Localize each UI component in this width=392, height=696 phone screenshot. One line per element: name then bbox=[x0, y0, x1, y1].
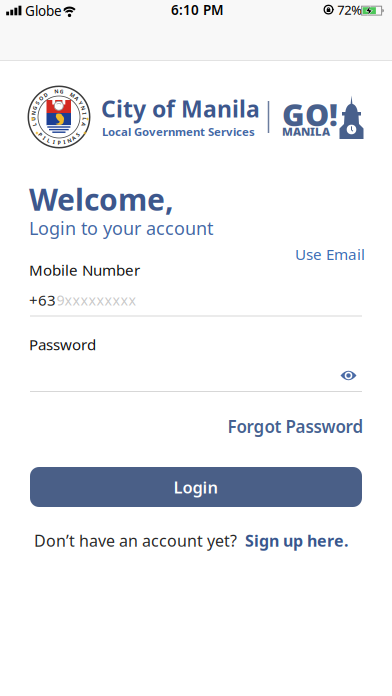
staticText: Login bbox=[173, 476, 218, 498]
staticText: Don’t have an account yet? bbox=[34, 530, 237, 551]
staticText: 72% bbox=[337, 1, 362, 18]
staticText: Welcome, bbox=[29, 179, 174, 219]
staticText: N bbox=[67, 137, 71, 144]
staticText: Sign up here. bbox=[245, 530, 348, 551]
button[interactable]: Login bbox=[30, 467, 362, 507]
staticText: Forgot Password bbox=[227, 415, 363, 438]
staticText: MANILA bbox=[282, 124, 330, 139]
staticText: A bbox=[82, 121, 86, 128]
staticText: Local Government Services bbox=[102, 124, 255, 139]
staticText: +63 bbox=[29, 290, 56, 310]
staticText: P bbox=[57, 139, 60, 146]
staticText: D bbox=[43, 91, 47, 98]
button[interactable]: Use Email bbox=[290, 244, 370, 264]
staticText: G bbox=[33, 104, 37, 111]
staticText: I bbox=[63, 138, 65, 145]
staticText: 9xxxxxxxxx bbox=[56, 291, 136, 309]
staticText: S bbox=[36, 99, 39, 106]
staticText: I bbox=[83, 110, 85, 117]
staticText: U bbox=[31, 115, 35, 122]
staticText: Globe bbox=[25, 2, 62, 20]
staticText: S bbox=[76, 131, 79, 138]
button[interactable]: Show password bbox=[339, 370, 357, 381]
staticText: City of Manila bbox=[101, 93, 260, 124]
staticText: O bbox=[39, 95, 43, 102]
staticText: 6:10 PM bbox=[171, 1, 224, 19]
staticText: A bbox=[75, 95, 79, 102]
staticText: M bbox=[70, 91, 75, 98]
staticText: GO! bbox=[282, 94, 338, 135]
staticText: N bbox=[54, 88, 58, 95]
button[interactable]: Sign up here. bbox=[245, 530, 348, 551]
staticText: L bbox=[83, 115, 86, 122]
staticText: L bbox=[33, 121, 36, 128]
staticText: Y bbox=[79, 99, 82, 106]
staticText: L bbox=[47, 137, 50, 144]
staticText: Password bbox=[29, 334, 96, 355]
staticText: G bbox=[60, 88, 64, 95]
staticText: Use Email bbox=[295, 244, 365, 264]
staticText: N bbox=[81, 104, 85, 111]
staticText: Login to your account bbox=[29, 216, 213, 240]
staticText: Mobile Number bbox=[29, 260, 140, 280]
staticText: N bbox=[31, 110, 35, 117]
staticText: I bbox=[53, 138, 55, 145]
staticText: A bbox=[72, 134, 76, 141]
staticText: I bbox=[43, 134, 45, 141]
staticText: P bbox=[39, 131, 42, 138]
button[interactable]: Forgot Password bbox=[225, 414, 365, 438]
